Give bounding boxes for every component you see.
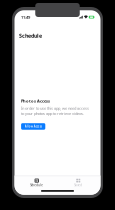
staticText: 11:49 — [21, 14, 30, 20]
button[interactable]: Saved — [57, 178, 99, 187]
staticText: Allow Access — [25, 125, 42, 128]
staticText: In order to use this app, we need access… — [21, 105, 89, 116]
button[interactable]: Schedule — [16, 178, 57, 187]
staticText: Schedule — [30, 183, 43, 187]
button[interactable]: Allow Access — [21, 123, 45, 130]
staticText: Saved — [74, 183, 82, 187]
staticText: Schedule — [19, 32, 42, 39]
staticText: Photos Access — [21, 98, 50, 103]
